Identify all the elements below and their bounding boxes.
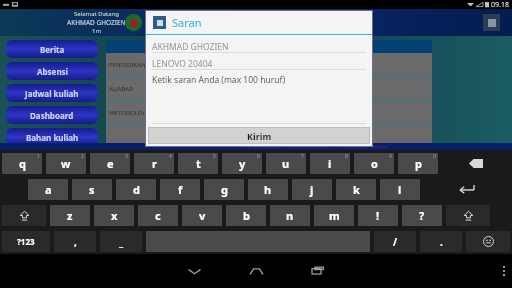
button[interactable]: s xyxy=(72,179,112,200)
staticText: g xyxy=(221,182,228,197)
staticText: 1m xyxy=(92,27,102,35)
staticText: e xyxy=(107,156,114,171)
button[interactable]: . xyxy=(420,231,462,252)
button[interactable]: Bahan kuliah xyxy=(6,128,98,146)
staticText: u xyxy=(282,156,290,171)
button[interactable]: Home xyxy=(239,254,273,288)
button[interactable]: v xyxy=(182,205,222,226)
button[interactable]: Kirim xyxy=(149,128,369,143)
staticText: w xyxy=(61,156,71,171)
button[interactable]: AKHMAD GHOZIEN xyxy=(152,40,366,53)
staticText: ? xyxy=(419,208,425,223)
button[interactable]: l xyxy=(380,179,420,200)
button[interactable]: Absensi xyxy=(6,62,98,80)
button[interactable]: k xyxy=(336,179,376,200)
button[interactable]: o xyxy=(354,153,394,174)
button[interactable]: Menu xyxy=(483,14,500,31)
staticText: p xyxy=(415,156,422,171)
button[interactable]: i xyxy=(310,153,350,174)
staticText: Goo gle play google inc. app store ads l… xyxy=(245,144,388,149)
button[interactable]: Ketik saran Anda (max 100 huruf) xyxy=(152,74,366,124)
button[interactable]: y xyxy=(222,153,262,174)
staticText: j xyxy=(310,182,314,197)
button[interactable]: _ xyxy=(100,231,142,252)
staticText: Selamat Datang xyxy=(74,10,119,18)
staticText: Berita xyxy=(40,44,65,55)
button[interactable]: PENDIDIKAN xyxy=(106,53,432,77)
button[interactable]: r xyxy=(134,153,174,174)
staticText: . xyxy=(440,235,443,249)
button[interactable]: h xyxy=(248,179,288,200)
staticText: 5 xyxy=(213,153,216,160)
button[interactable]: f xyxy=(160,179,200,200)
button[interactable]: Backspace xyxy=(440,151,512,176)
button[interactable]: / xyxy=(374,231,416,252)
staticText: Kirim xyxy=(247,130,272,142)
button[interactable]: u xyxy=(266,153,306,174)
button[interactable]: x xyxy=(94,205,134,226)
button[interactable]: w xyxy=(46,153,86,174)
button[interactable]: Berita xyxy=(6,40,98,58)
button[interactable]: Enter xyxy=(422,177,512,202)
button[interactable]: a xyxy=(28,179,68,200)
button[interactable]: p xyxy=(398,153,438,174)
staticText: f xyxy=(178,182,183,197)
staticText: z xyxy=(67,208,73,223)
staticText: r xyxy=(152,156,157,171)
staticText: l xyxy=(398,182,402,197)
button[interactable]: METODOLOGI xyxy=(106,101,432,125)
staticText: 4 xyxy=(169,153,172,160)
staticText: 2 xyxy=(81,153,84,160)
staticText: i xyxy=(328,156,332,171)
button[interactable]: m xyxy=(314,205,354,226)
staticText: t xyxy=(196,156,201,171)
staticText: a xyxy=(45,182,52,197)
button[interactable]: ALJABAR xyxy=(106,77,432,101)
button[interactable]: Jadwal kuliah xyxy=(6,84,98,102)
button[interactable]: t xyxy=(178,153,218,174)
staticText: Ketik saran Anda (max 100 huruf) xyxy=(152,74,286,86)
staticText: Absensi xyxy=(37,66,68,77)
button[interactable]: e xyxy=(90,153,130,174)
staticText: x xyxy=(111,208,118,223)
button[interactable]: c xyxy=(138,205,178,226)
button[interactable]: ?123 xyxy=(2,231,50,252)
button[interactable]: , xyxy=(54,231,96,252)
staticText: y xyxy=(239,156,246,171)
staticText: k xyxy=(353,182,360,197)
staticText: c xyxy=(155,208,161,223)
button[interactable]: Emoji xyxy=(466,231,510,252)
button[interactable]: j xyxy=(292,179,332,200)
staticText: ALJABAR xyxy=(109,85,133,93)
staticText: Bahan kuliah xyxy=(26,132,79,143)
button[interactable]: q xyxy=(2,153,42,174)
staticText: 9 xyxy=(389,153,392,160)
staticText: METODOLOGI xyxy=(109,109,149,117)
button[interactable]: More options xyxy=(503,266,505,276)
button[interactable]: g xyxy=(204,179,244,200)
button[interactable]: Dashboard xyxy=(6,106,98,124)
staticText: Jadwal kuliah xyxy=(25,88,79,99)
button[interactable]: ! xyxy=(358,205,398,226)
staticText: d xyxy=(133,182,140,197)
button[interactable] xyxy=(106,125,432,149)
staticText: q xyxy=(19,156,26,171)
staticText: Dashboard xyxy=(30,110,74,121)
button[interactable]: d xyxy=(116,179,156,200)
button[interactable]: ? xyxy=(402,205,442,226)
button[interactable]: LENOVO 20404 xyxy=(152,57,366,70)
button[interactable]: b xyxy=(226,205,266,226)
staticText: s xyxy=(89,182,95,197)
button[interactable]: z xyxy=(50,205,90,226)
button[interactable]: Back xyxy=(177,254,211,288)
staticText: ! xyxy=(376,208,380,223)
button[interactable]: n xyxy=(270,205,310,226)
button[interactable]: Logo xyxy=(125,14,142,31)
staticText: 3 xyxy=(125,153,128,160)
button[interactable]: Shift xyxy=(446,205,490,226)
staticText: 09.18 xyxy=(491,0,509,9)
staticText: AKHMAD GHOZIEN xyxy=(67,18,126,27)
button[interactable]: Recents xyxy=(301,254,335,288)
button[interactable]: Shift xyxy=(2,205,46,226)
